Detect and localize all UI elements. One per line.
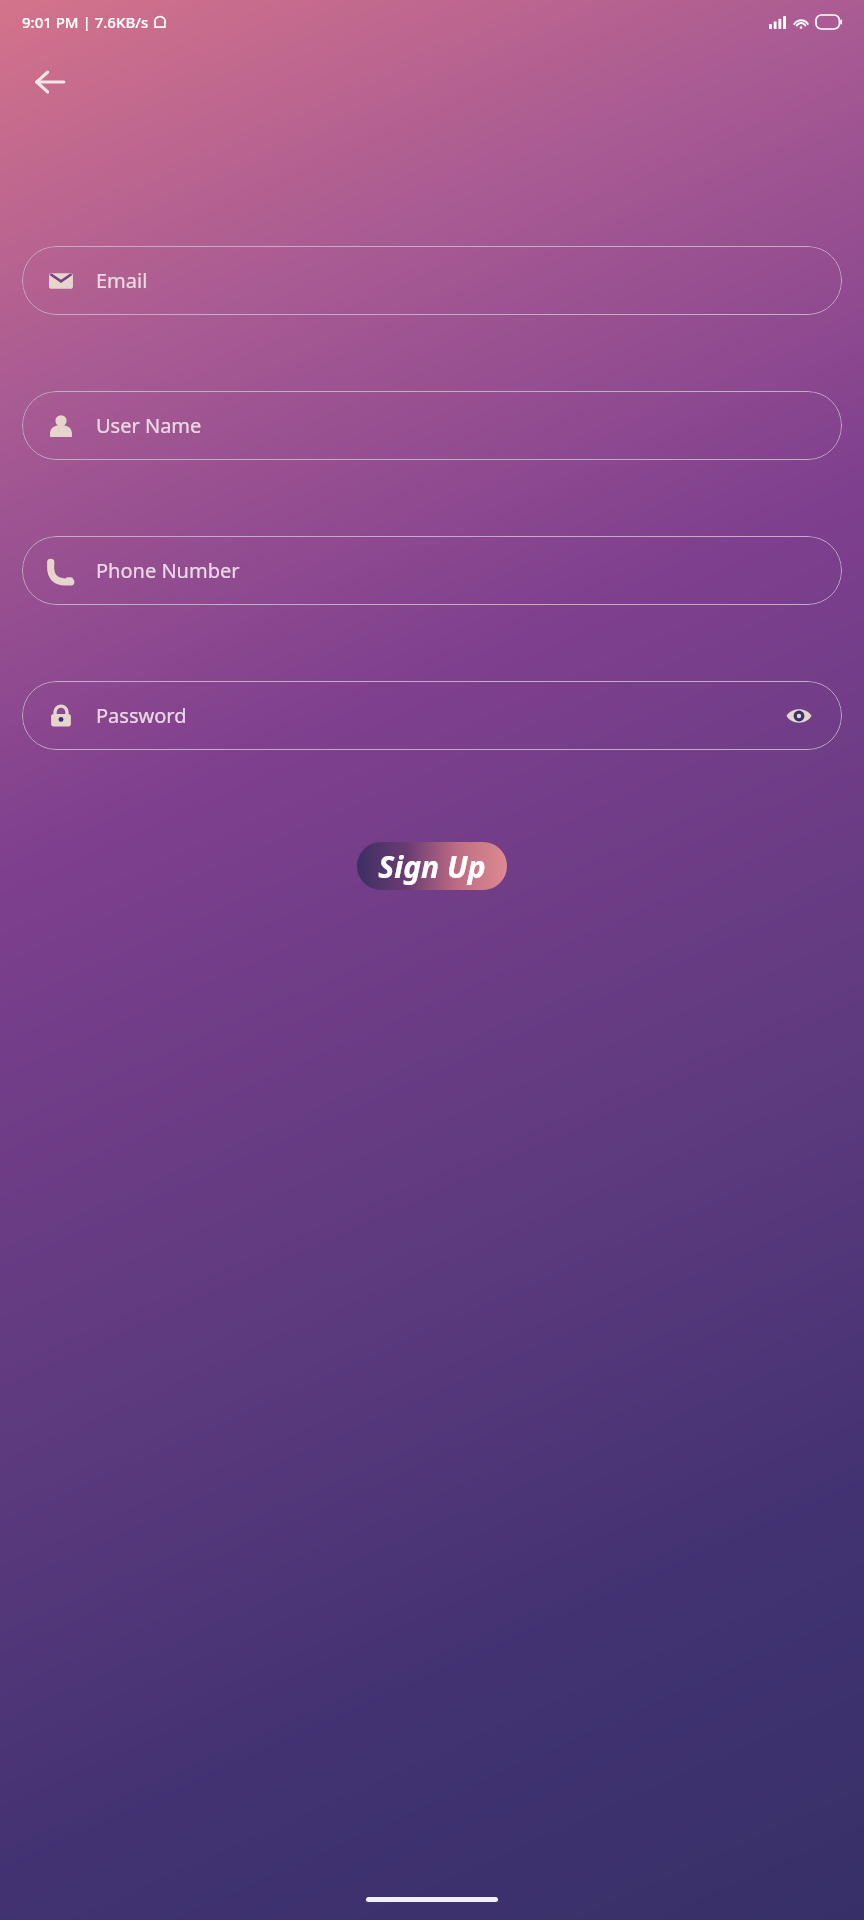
staticText: User Name <box>96 412 202 439</box>
staticText: Sign Up <box>378 846 486 887</box>
staticText: Password <box>96 702 187 729</box>
staticText: Email <box>96 267 148 294</box>
staticText: Phone Number <box>96 557 240 584</box>
button[interactable]: Back <box>24 56 76 108</box>
button[interactable]: Show password <box>782 699 816 733</box>
button[interactable]: Email <box>22 246 842 315</box>
button[interactable]: User Name <box>22 391 842 460</box>
staticText: 9:01 PM | 7.6KB/s <box>22 12 149 32</box>
button[interactable]: Sign Up <box>357 842 507 890</box>
button[interactable]: Phone Number <box>22 536 842 605</box>
button[interactable]: Password <box>22 681 842 750</box>
